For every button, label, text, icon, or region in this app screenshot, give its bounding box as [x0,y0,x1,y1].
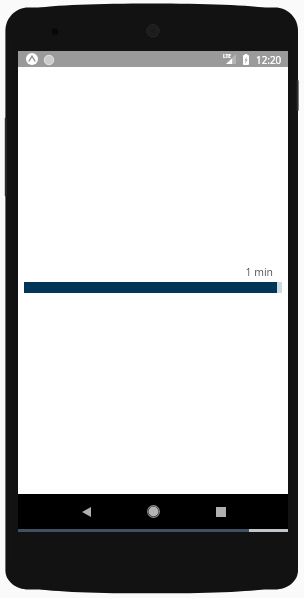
button[interactable]: Recents [199,494,243,529]
staticText: 12:20 [256,53,282,66]
button[interactable]: Home [131,494,175,529]
button[interactable] [24,282,282,293]
staticText: 1 min [24,265,273,279]
button[interactable]: Back [64,494,108,529]
staticText: LTE [223,53,231,59]
